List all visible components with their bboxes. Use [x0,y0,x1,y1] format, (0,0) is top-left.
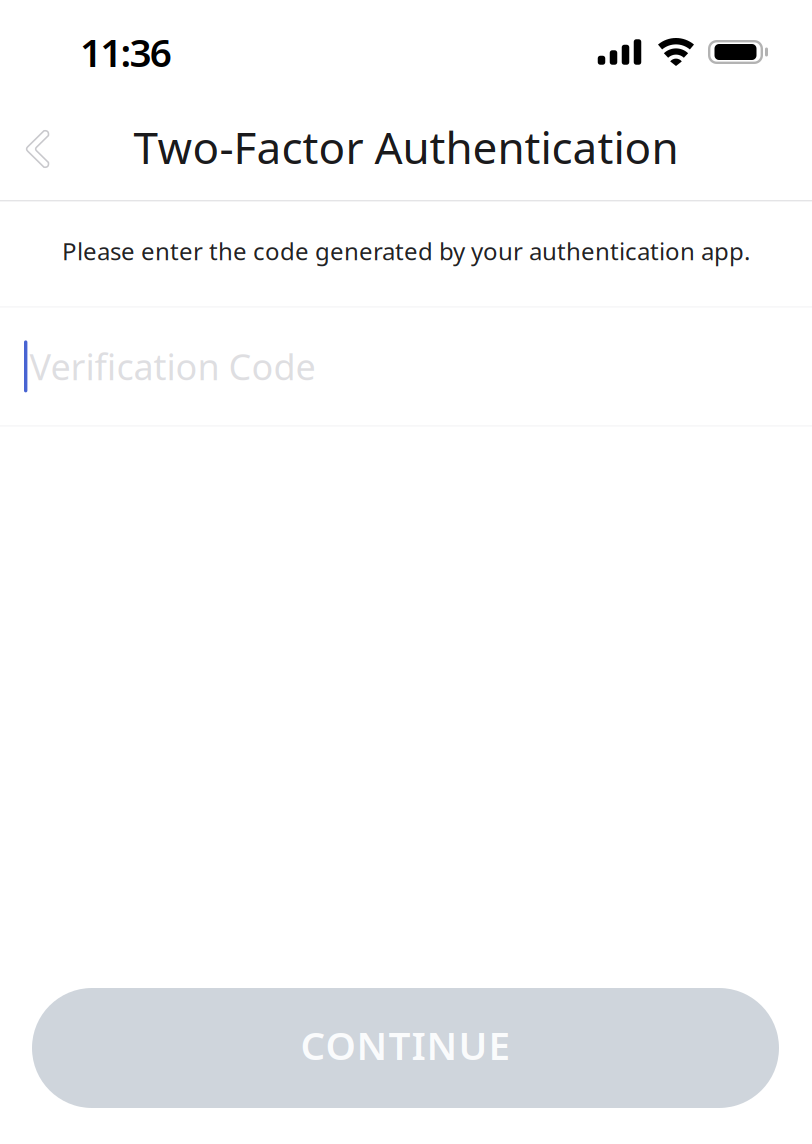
button[interactable]: CONTINUE [32,988,779,1108]
button[interactable]: Verification Code [0,307,812,425]
staticText: Two-Factor Authentication [133,118,678,176]
staticText: 11:36 [80,26,172,78]
staticText: Verification Code [29,342,315,390]
button[interactable]: Back [0,94,74,200]
staticText: Please enter the code generated by your … [62,235,750,267]
staticText: CONTINUE [300,1019,510,1071]
